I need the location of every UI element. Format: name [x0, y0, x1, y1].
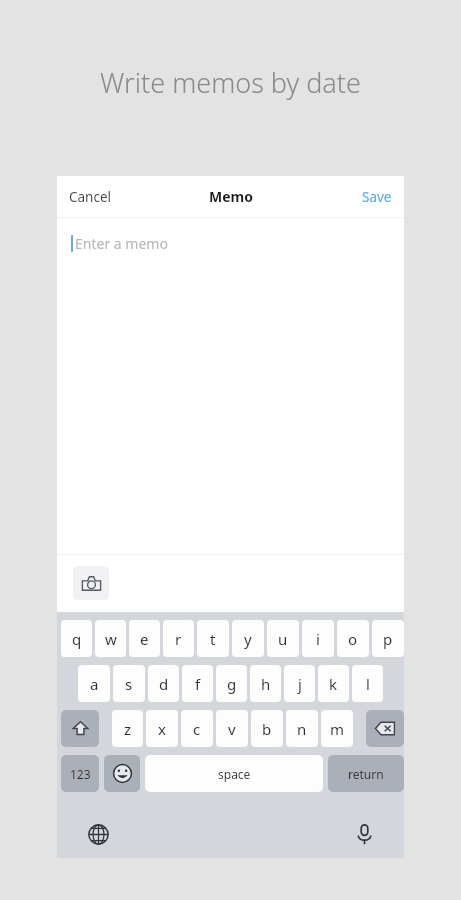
staticText: s — [125, 674, 133, 694]
button[interactable]: z — [112, 710, 143, 747]
staticText: g — [227, 674, 237, 694]
staticText: 123 — [70, 766, 91, 782]
staticText: h — [261, 674, 271, 694]
button[interactable]: e — [129, 620, 160, 657]
button[interactable]: r — [163, 620, 194, 657]
button[interactable]: j — [284, 665, 315, 702]
staticText: return — [348, 766, 384, 782]
staticText: o — [348, 629, 358, 649]
button[interactable]: h — [250, 665, 281, 702]
button[interactable]: c — [181, 710, 213, 747]
staticText: Write memos by date — [100, 64, 361, 101]
staticText: Cancel — [69, 188, 112, 206]
staticText: Memo — [209, 187, 253, 206]
staticText: d — [159, 674, 169, 694]
button[interactable]: space — [145, 755, 323, 792]
button[interactable]: y — [232, 620, 264, 657]
staticText: y — [244, 629, 252, 649]
staticText: l — [366, 674, 370, 694]
button[interactable]: i — [302, 620, 334, 657]
staticText: Save — [362, 188, 392, 206]
button[interactable]: d — [148, 665, 179, 702]
staticText: Enter a memo — [75, 234, 168, 253]
button[interactable]: o — [337, 620, 369, 657]
button[interactable]: x — [146, 710, 178, 747]
staticText: space — [218, 766, 251, 782]
button[interactable]: a — [78, 665, 110, 702]
staticText: a — [90, 674, 99, 694]
button[interactable]: b — [251, 710, 283, 747]
staticText: z — [124, 719, 132, 739]
staticText: w — [105, 629, 117, 649]
button[interactable]: v — [216, 710, 248, 747]
staticText: t — [210, 629, 216, 649]
button[interactable]: Save — [354, 182, 400, 212]
staticText: k — [329, 674, 338, 694]
staticText: e — [140, 629, 149, 649]
button[interactable]: Voice input — [347, 817, 381, 851]
staticText: n — [297, 719, 307, 739]
button[interactable]: f — [182, 665, 213, 702]
staticText: f — [195, 674, 201, 694]
button[interactable]: q — [61, 620, 92, 657]
button[interactable]: w — [95, 620, 126, 657]
button[interactable]: g — [216, 665, 247, 702]
button[interactable]: Backspace — [366, 710, 404, 747]
staticText: p — [383, 629, 393, 649]
button[interactable]: s — [113, 665, 145, 702]
staticText: m — [330, 719, 345, 739]
button[interactable]: l — [352, 665, 383, 702]
button[interactable]: return — [328, 755, 404, 792]
button[interactable]: 123 — [61, 755, 99, 792]
button[interactable]: Change keyboard — [81, 817, 115, 851]
staticText: b — [262, 719, 272, 739]
button[interactable]: Attach photo — [73, 566, 109, 600]
staticText: i — [316, 629, 320, 649]
staticText: u — [278, 629, 288, 649]
staticText: x — [158, 719, 166, 739]
staticText: r — [175, 629, 182, 649]
button[interactable]: Emoji — [104, 755, 140, 792]
button[interactable]: t — [197, 620, 229, 657]
staticText: v — [228, 719, 236, 739]
staticText: j — [298, 674, 302, 694]
button[interactable]: p — [372, 620, 404, 657]
staticText: c — [193, 719, 201, 739]
staticText: q — [72, 629, 82, 649]
button[interactable]: Cancel — [61, 182, 120, 212]
button[interactable]: n — [286, 710, 318, 747]
button[interactable]: k — [318, 665, 349, 702]
button[interactable]: u — [267, 620, 299, 657]
button[interactable]: Shift — [61, 710, 99, 747]
button[interactable]: m — [321, 710, 353, 747]
